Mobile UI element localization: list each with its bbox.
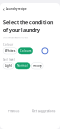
staticText: Soil level xyxy=(3,58,15,61)
button[interactable]: Previous xyxy=(8,109,19,113)
staticText: ‹ xyxy=(3,5,5,13)
button[interactable]: Heavy xyxy=(31,63,43,69)
button[interactable]: ‹ xyxy=(3,5,27,13)
staticText: Colour xyxy=(3,43,13,46)
button[interactable]: Colours xyxy=(18,48,33,54)
button[interactable]: Normal xyxy=(15,63,30,69)
staticText: Light xyxy=(5,64,12,68)
staticText: Choose what best matches your load xyxy=(3,37,28,39)
staticText: Get suggestions xyxy=(32,109,55,113)
button[interactable]: Light xyxy=(3,63,14,69)
staticText: Heavy xyxy=(33,64,41,68)
staticText: Colours xyxy=(20,49,31,53)
staticText: Laundry recipe xyxy=(6,7,27,11)
staticText: Whites xyxy=(5,49,15,53)
button[interactable]: Add colour xyxy=(42,48,48,54)
staticText: of your laundry xyxy=(3,26,40,33)
staticText: Previous xyxy=(8,109,19,113)
button[interactable]: Get suggestions xyxy=(32,109,55,113)
button[interactable]: Whites xyxy=(3,48,17,54)
staticText: Select the condition xyxy=(3,19,53,26)
staticText: Normal xyxy=(17,64,28,68)
